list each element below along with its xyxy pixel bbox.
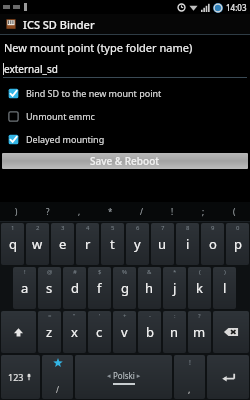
button[interactable]: / (126, 202, 157, 221)
staticText: ! (189, 358, 191, 368)
staticText: Delayed mounting (26, 133, 105, 145)
staticText: ) (224, 268, 226, 276)
staticText: , (188, 383, 191, 395)
staticText: ( (199, 268, 201, 276)
staticText: = (48, 312, 52, 320)
staticText: q (9, 235, 17, 253)
button[interactable]: Save & Reboot (2, 153, 248, 169)
button[interactable]: 2 (26, 223, 49, 265)
button[interactable]: ) (0, 202, 32, 221)
staticText: ? (46, 206, 50, 217)
staticText: Polski (113, 370, 135, 381)
staticText: ▸ (135, 371, 141, 381)
button[interactable]: 3 (51, 223, 74, 265)
staticText: c (96, 323, 103, 341)
staticText: a (21, 279, 29, 297)
staticText: d (71, 279, 79, 297)
button[interactable]: = (38, 311, 61, 353)
staticText: ! (171, 206, 174, 217)
button[interactable]: 6 (126, 223, 149, 265)
staticText: g (121, 279, 129, 297)
button[interactable]: 9 (201, 223, 224, 265)
button[interactable]: 8 (176, 223, 199, 265)
staticText: b (146, 323, 154, 341)
staticText: 8 (186, 224, 190, 232)
button[interactable]: Backspace (213, 311, 249, 353)
staticText: ? (198, 312, 201, 320)
staticText: / (140, 206, 143, 217)
button[interactable]: # (63, 267, 86, 309)
staticText: 0 (236, 224, 240, 232)
staticText: & (147, 268, 152, 276)
staticText: l (223, 279, 227, 297)
button[interactable]: 4 (76, 223, 99, 265)
staticText: $ (98, 268, 102, 276)
staticText: ! (24, 268, 26, 276)
button[interactable]: ! (157, 202, 188, 221)
staticText: # (73, 268, 77, 276)
button[interactable]: Space, Polski (75, 355, 172, 399)
button[interactable]: external_sd (3, 60, 247, 77)
button[interactable]: & (138, 267, 161, 309)
button[interactable]: Bind SD to the new mount point (0, 83, 250, 103)
button[interactable]: + (113, 311, 136, 353)
button[interactable]: Settings (42, 355, 73, 399)
button[interactable]: ? (188, 311, 211, 353)
staticText: : (174, 312, 176, 320)
button[interactable]: 7 (151, 223, 174, 265)
button[interactable]: ( (219, 202, 250, 221)
staticText: ICS SD Binder (23, 17, 95, 32)
staticText: ' (99, 312, 101, 320)
staticText: k (196, 279, 203, 297)
button[interactable]: 5 (101, 223, 124, 265)
staticText: w (32, 235, 43, 253)
button[interactable]: Enter (207, 355, 249, 399)
staticText: h (145, 279, 154, 297)
staticText: 9 (211, 224, 215, 232)
staticText: " (73, 312, 76, 320)
staticText: i (186, 235, 190, 253)
staticText: 7 (161, 224, 165, 232)
button[interactable]: Unmount emmc (0, 106, 250, 126)
staticText: Bind SD to the new mount point (26, 87, 162, 99)
button[interactable]: % (113, 267, 136, 309)
staticText: 6 (136, 224, 140, 232)
button[interactable]: ; (188, 202, 219, 221)
button[interactable]: " (63, 311, 86, 353)
button[interactable]: , (64, 202, 95, 221)
button[interactable]: * (95, 202, 126, 221)
staticText: 5 (111, 224, 115, 232)
staticText: m (193, 323, 206, 341)
button[interactable]: ' (88, 311, 111, 353)
button[interactable]: Delayed mounting (0, 129, 250, 149)
staticText: ◂ (107, 371, 113, 381)
button[interactable]: $ (88, 267, 111, 309)
staticText: 3 (61, 224, 65, 232)
button[interactable]: 0 (226, 223, 249, 265)
staticText: Save & Reboot (90, 154, 160, 168)
staticText: @ (47, 268, 53, 276)
button[interactable]: * (163, 267, 186, 309)
staticText: z (46, 323, 53, 341)
staticText: 2 (36, 224, 40, 232)
button[interactable]: ( (188, 267, 211, 309)
button[interactable]: Symbols and voice input (1, 355, 40, 399)
staticText: 14:03 (226, 2, 247, 13)
button[interactable]: Period (174, 355, 205, 399)
staticText: s (46, 279, 53, 297)
staticText: v (121, 323, 128, 341)
staticText: 4 (86, 224, 90, 232)
button[interactable]: : (163, 311, 186, 353)
button[interactable]: @ (38, 267, 61, 309)
staticText: t (110, 235, 115, 253)
button[interactable]: 1 (1, 223, 24, 265)
button[interactable]: ? (32, 202, 64, 221)
button[interactable]: ) (213, 267, 236, 309)
button[interactable]: Shift (1, 311, 36, 353)
staticText: p (234, 235, 242, 253)
button[interactable]: - (138, 311, 161, 353)
staticText: - (149, 312, 151, 320)
button[interactable]: ! (13, 267, 36, 309)
staticText: , (78, 206, 81, 217)
staticText: ; (202, 206, 205, 217)
